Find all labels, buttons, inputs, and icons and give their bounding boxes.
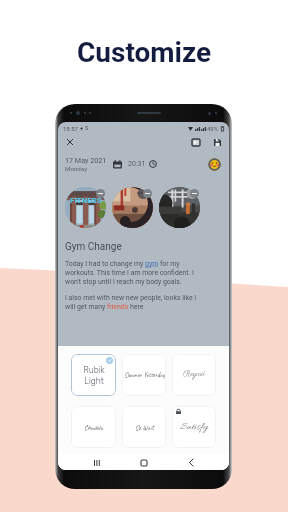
- button[interactable]: Satisfy: [172, 406, 216, 448]
- button[interactable]: Layout: [190, 136, 202, 148]
- button[interactable]: Close: [64, 136, 76, 148]
- button[interactable]: Regard: [172, 354, 216, 396]
- staticText: Summer Yesterday: [124, 371, 165, 379]
- staticText: So Wait: [135, 423, 154, 432]
- staticText: S: [85, 125, 89, 131]
- staticText: 15:57: [63, 125, 78, 132]
- button[interactable]: Candela: [71, 406, 116, 448]
- staticText: Customize: [77, 36, 212, 69]
- button[interactable]: Remove photo: [96, 189, 105, 198]
- staticText: Regard: [183, 370, 205, 380]
- staticText: Monday: [65, 165, 88, 172]
- button[interactable]: Mood: [208, 158, 221, 171]
- staticText: Rubik Light: [83, 365, 105, 386]
- button[interactable]: Save: [211, 136, 223, 148]
- staticText: Candela: [84, 423, 103, 432]
- button[interactable]: Equipment photo: [159, 187, 200, 228]
- button[interactable]: Remove photo: [190, 189, 199, 198]
- staticText: 49%: [207, 125, 219, 132]
- staticText: 20:31: [128, 160, 146, 168]
- button[interactable]: Rubik Light: [71, 354, 116, 396]
- staticText: Gym Change: [65, 241, 122, 253]
- button[interactable]: Gym photo: [65, 187, 106, 228]
- staticText: Today I had to change my gym for my work…: [65, 260, 194, 286]
- staticText: I also met with new new people, looks li…: [65, 294, 197, 311]
- staticText: FITNESS: [70, 196, 102, 205]
- button[interactable]: Back: [184, 456, 197, 469]
- button[interactable]: Remove photo: [143, 189, 152, 198]
- staticText: 17 May 2021: [65, 156, 107, 164]
- staticText: Satisfy: [180, 420, 208, 434]
- button[interactable]: Summer Yesterday: [122, 354, 166, 396]
- button[interactable]: Home: [137, 456, 150, 469]
- button[interactable]: Workout photo: [112, 187, 153, 228]
- button[interactable]: So Wait: [122, 406, 166, 448]
- button[interactable]: Recents: [90, 456, 103, 469]
